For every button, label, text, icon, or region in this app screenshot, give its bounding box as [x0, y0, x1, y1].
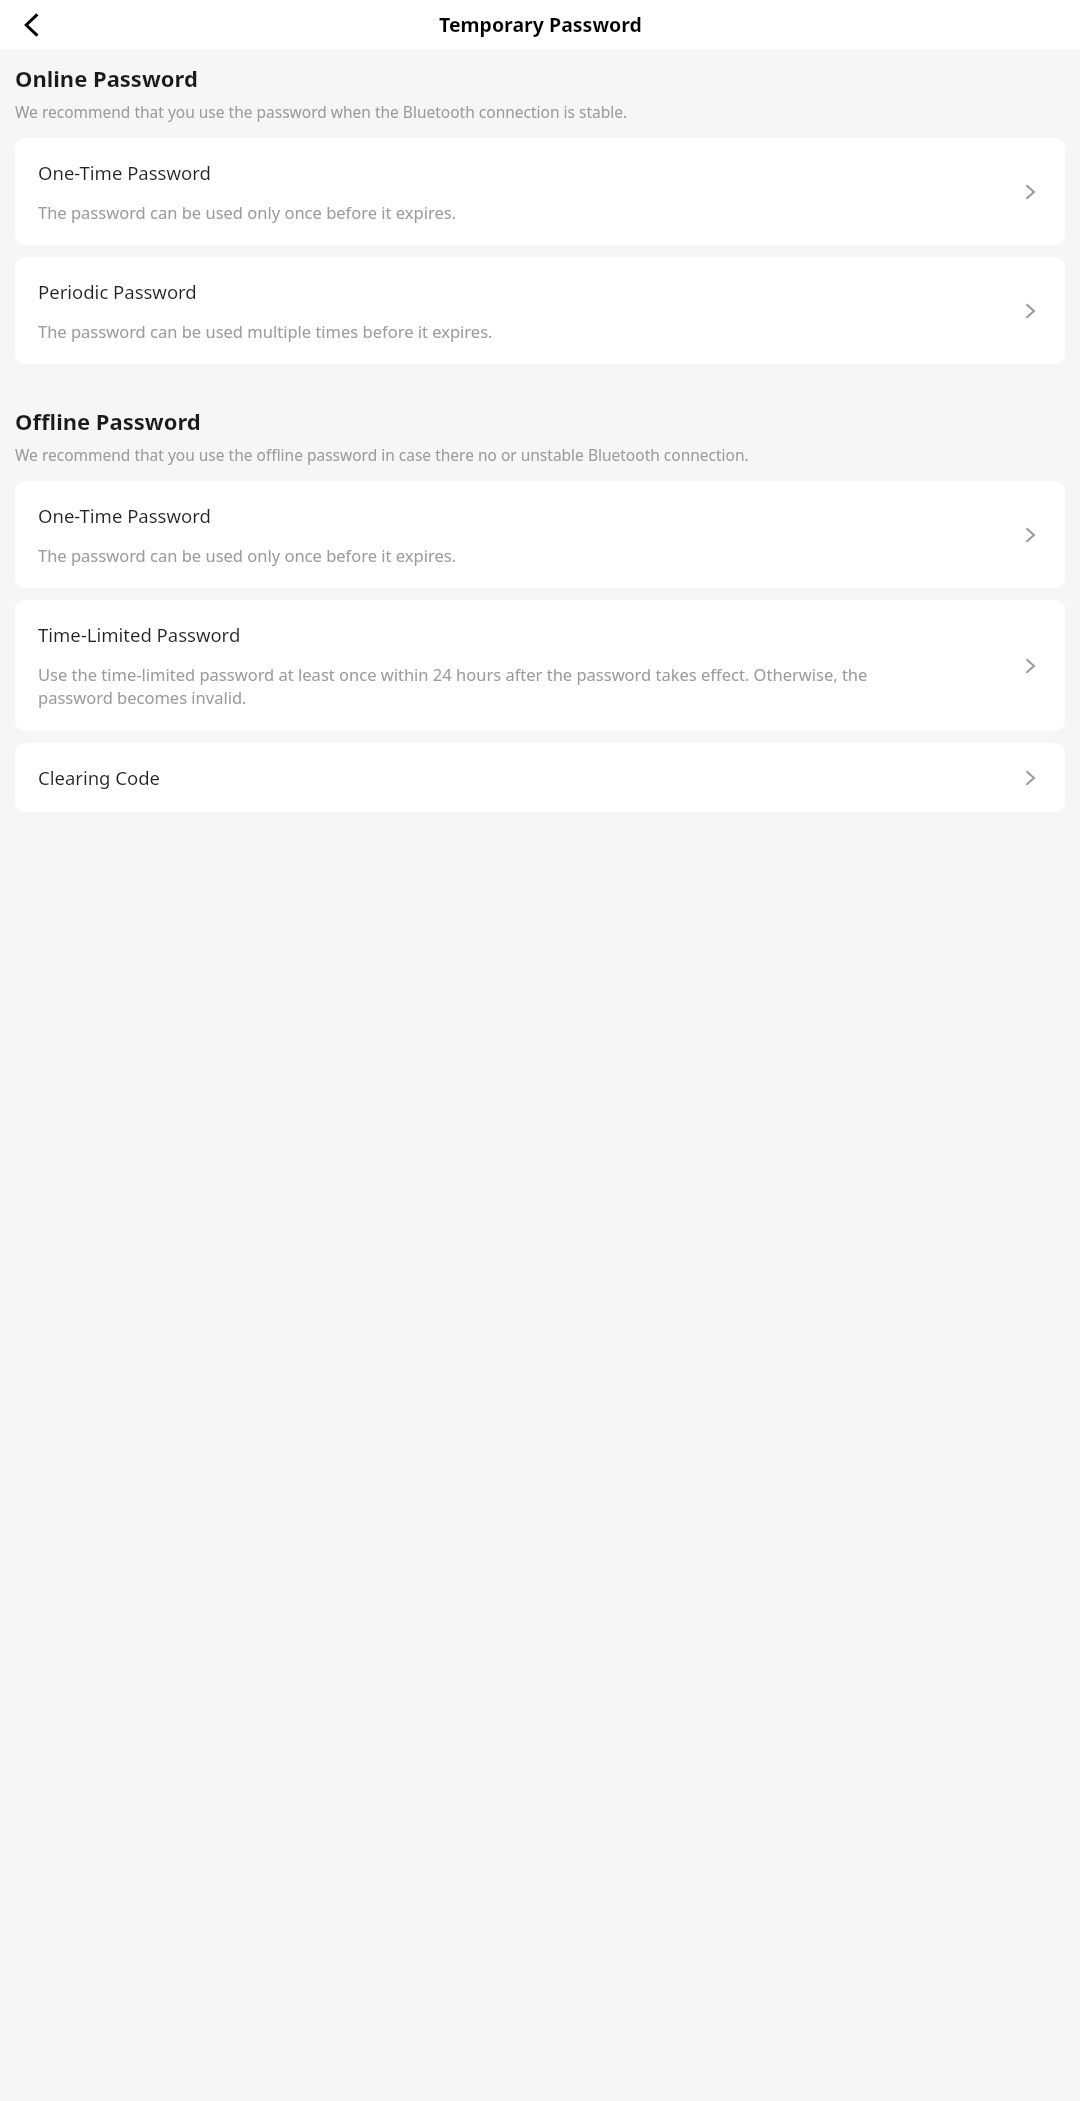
staticText: Time-Limited Password	[38, 622, 241, 647]
staticText: The password can be used only once befor…	[38, 201, 918, 223]
button[interactable]: Back	[8, 1, 56, 49]
staticText: The password can be used multiple times …	[38, 320, 918, 342]
button[interactable]: One-Time Password	[15, 138, 1065, 245]
staticText: Clearing Code	[38, 765, 161, 790]
staticText: Offline Password	[15, 406, 201, 436]
button[interactable]: Periodic Password	[15, 257, 1065, 364]
staticText: Temporary Password	[439, 11, 642, 38]
button[interactable]: Time-Limited Password	[15, 600, 1065, 731]
staticText: We recommend that you use the offline pa…	[15, 444, 749, 465]
staticText: One-Time Password	[38, 160, 211, 185]
button[interactable]: One-Time Password	[15, 481, 1065, 588]
button[interactable]: Clearing Code	[15, 743, 1065, 812]
staticText: Periodic Password	[38, 279, 197, 304]
staticText: The password can be used only once befor…	[38, 544, 918, 566]
staticText: We recommend that you use the password w…	[15, 101, 628, 122]
staticText: One-Time Password	[38, 503, 211, 528]
staticText: Use the time-limited password at least o…	[38, 663, 918, 709]
staticText: Online Password	[15, 63, 198, 93]
